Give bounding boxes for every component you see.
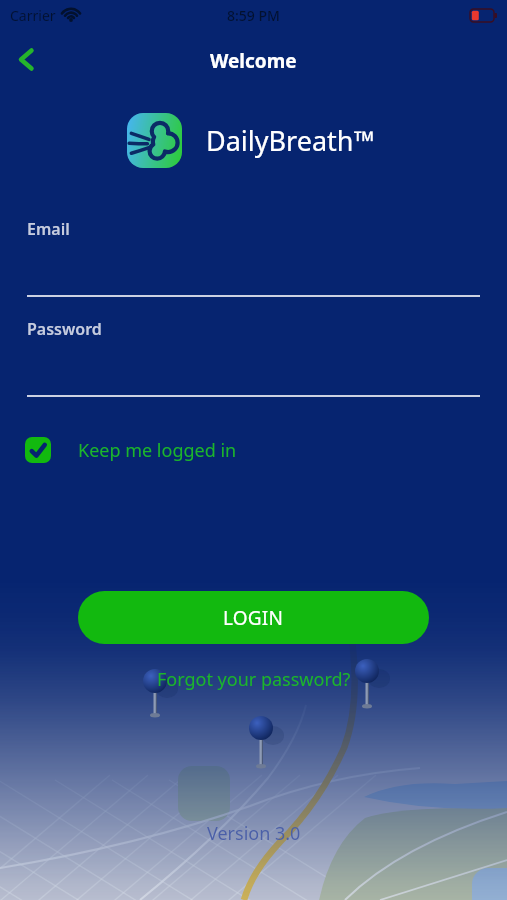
staticText: Password — [27, 318, 102, 340]
staticText: Carrier — [10, 6, 56, 25]
staticText: Version 3.0 — [207, 821, 301, 846]
button[interactable]: Forgot your password? — [157, 667, 351, 692]
staticText: Keep me logged in — [78, 438, 237, 463]
staticText: 8:59 PM — [227, 6, 280, 25]
button[interactable]: Keep me logged in — [25, 437, 237, 463]
button[interactable]: LOGIN — [78, 591, 429, 644]
staticText: DailyBreath™ — [206, 122, 375, 159]
staticText: Email — [27, 218, 70, 240]
staticText: Welcome — [210, 48, 297, 74]
button[interactable] — [10, 43, 42, 75]
staticText: LOGIN — [223, 605, 284, 631]
